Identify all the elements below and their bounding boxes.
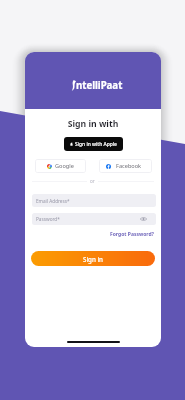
staticText: Google xyxy=(55,162,74,170)
staticText: Sign in with xyxy=(25,118,161,130)
staticText: Password* xyxy=(36,216,60,222)
staticText: Sign in with Apple xyxy=(75,141,117,148)
button[interactable]: Facebook xyxy=(99,159,152,173)
button[interactable]: Password* xyxy=(32,213,156,225)
other: Show password xyxy=(140,217,147,221)
button[interactable]: Google xyxy=(35,159,86,173)
button[interactable]: Sign in xyxy=(31,251,155,266)
staticText: or xyxy=(90,178,95,184)
staticText: Facebook xyxy=(116,162,142,170)
button[interactable]: Sign in with Apple xyxy=(64,137,123,151)
staticText: ntelliPaat xyxy=(76,79,123,92)
button[interactable]: Email Address* xyxy=(32,194,156,207)
staticText: Sign in xyxy=(83,255,103,263)
button[interactable]: Forgot Password? xyxy=(25,231,154,238)
staticText: Email Address* xyxy=(36,198,70,204)
